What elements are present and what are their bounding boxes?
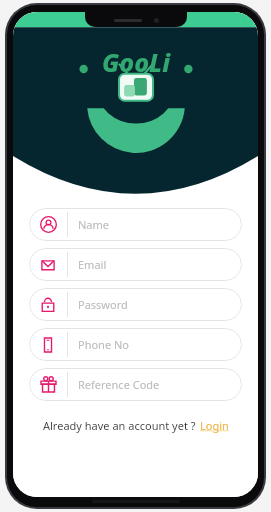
button[interactable]: Name field <box>29 208 242 241</box>
staticText: Login <box>200 418 229 433</box>
staticText: Phone No <box>78 337 129 352</box>
button[interactable]: Reference code field <box>29 368 242 401</box>
button[interactable]: Login <box>200 418 229 433</box>
staticText: Already have an account yet ? <box>43 418 196 433</box>
staticText: Email <box>78 257 107 272</box>
button[interactable]: Phone number field <box>29 328 242 361</box>
staticText: GooLi <box>102 45 170 79</box>
staticText: Reference Code <box>78 377 160 392</box>
staticText: Password <box>78 297 128 312</box>
staticText: Name <box>78 217 110 232</box>
button[interactable]: Email field <box>29 248 242 281</box>
button[interactable]: Password field <box>29 288 242 321</box>
